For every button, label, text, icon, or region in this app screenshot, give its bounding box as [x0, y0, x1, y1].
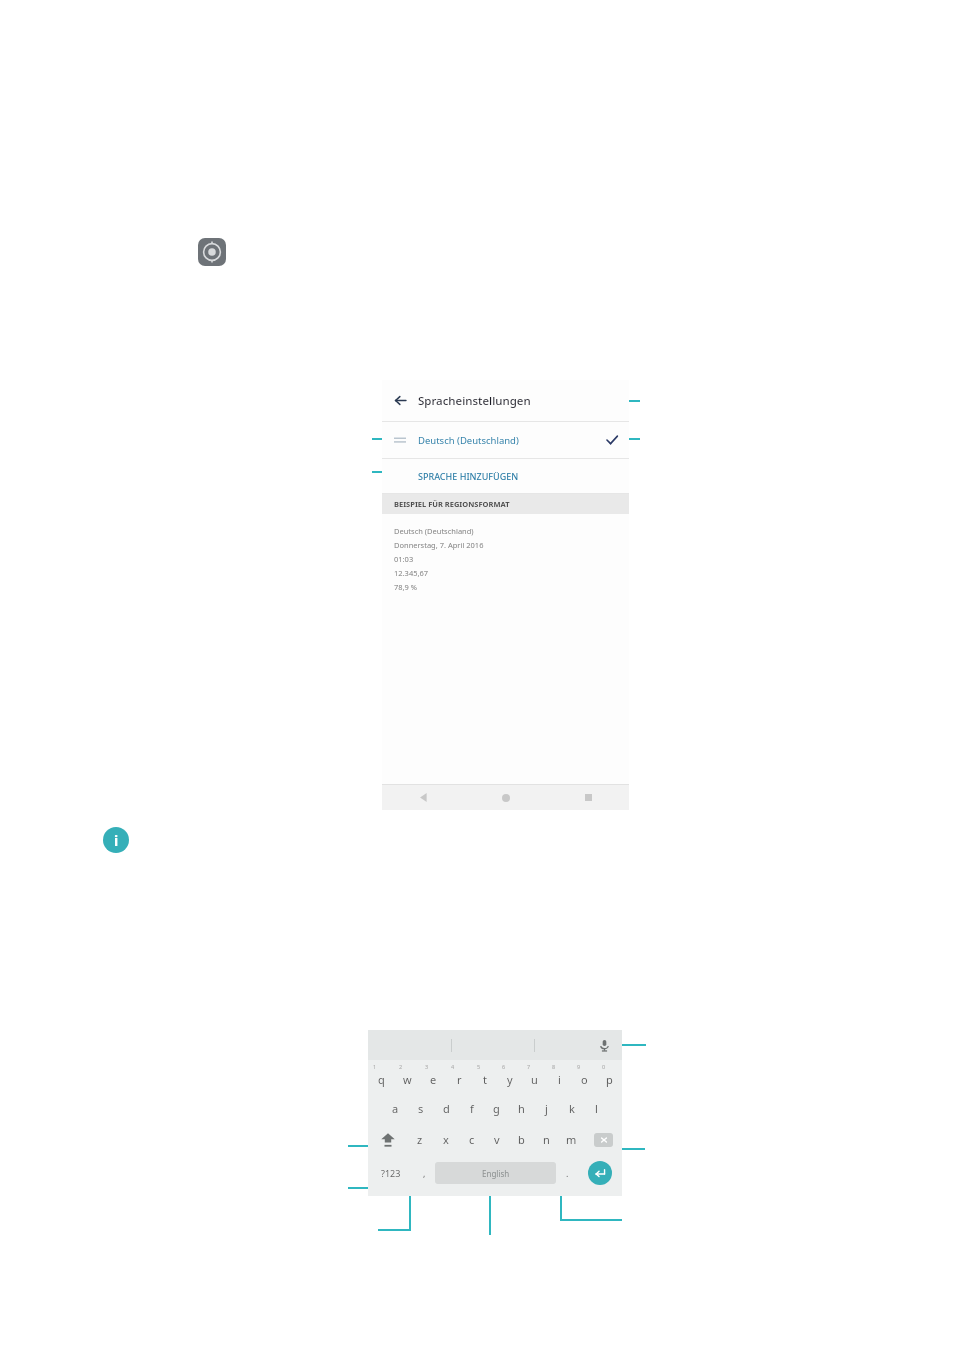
staticText: Spracheinstellungen	[418, 393, 531, 409]
button[interactable]: 4	[446, 1060, 472, 1093]
staticText: 6	[502, 1063, 506, 1070]
staticText: i	[558, 1072, 561, 1087]
button[interactable]: a	[382, 1093, 408, 1124]
button[interactable]: f	[459, 1093, 484, 1124]
staticText: 3	[425, 1063, 429, 1070]
staticText: g	[493, 1101, 500, 1116]
button[interactable]: 3	[420, 1060, 446, 1093]
button[interactable]: d	[434, 1093, 459, 1124]
staticText: English	[482, 1168, 510, 1179]
staticText: ,	[423, 1167, 426, 1179]
button[interactable]: 6	[497, 1060, 522, 1093]
button[interactable]: .	[556, 1155, 578, 1191]
button[interactable]: h	[509, 1093, 534, 1124]
staticText: v	[494, 1132, 500, 1147]
staticText: 78,9 %	[394, 582, 418, 592]
button[interactable]: App icon	[198, 238, 226, 266]
staticText: 01:03	[394, 554, 414, 564]
button[interactable]: n	[534, 1124, 559, 1155]
staticText: z	[417, 1132, 423, 1147]
staticText: 4	[451, 1063, 455, 1070]
staticText: ?123	[381, 1167, 401, 1179]
staticText: e	[430, 1072, 437, 1087]
staticText: h	[518, 1101, 525, 1116]
staticText: r	[457, 1072, 462, 1087]
staticText: m	[566, 1132, 577, 1147]
button[interactable]: g	[484, 1093, 509, 1124]
staticText: n	[543, 1132, 550, 1147]
staticText: x	[443, 1132, 449, 1147]
staticText: u	[531, 1072, 538, 1087]
button[interactable]: 8	[547, 1060, 572, 1093]
button[interactable]: 7	[522, 1060, 547, 1093]
staticText: Donnerstag, 7. April 2016	[394, 540, 484, 550]
staticText: k	[569, 1101, 575, 1116]
button[interactable]: k	[559, 1093, 584, 1124]
button[interactable]: ?123	[368, 1155, 413, 1191]
button[interactable]: 1	[368, 1060, 394, 1093]
staticText: 2	[399, 1063, 403, 1070]
button[interactable]: Back	[382, 380, 629, 421]
staticText: y	[507, 1072, 513, 1087]
staticText: l	[595, 1101, 598, 1116]
button[interactable]: Recents	[547, 785, 629, 810]
button[interactable]: Information	[103, 827, 129, 853]
staticText: w	[403, 1072, 412, 1087]
staticText: 7	[527, 1063, 531, 1070]
button[interactable]: Back	[382, 785, 465, 810]
staticText: 12.345,67	[394, 568, 429, 578]
staticText: BEISPIEL FÜR REGIONSFORMAT	[394, 499, 510, 509]
button[interactable]: Backspace	[584, 1124, 622, 1155]
button[interactable]: 2	[394, 1060, 420, 1093]
button[interactable]: m	[559, 1124, 584, 1155]
staticText: a	[392, 1101, 399, 1116]
button[interactable]: 5	[472, 1060, 497, 1093]
button[interactable]: English	[435, 1162, 556, 1184]
button[interactable]: 9	[572, 1060, 597, 1093]
staticText: b	[518, 1132, 525, 1147]
button[interactable]: Shift	[368, 1124, 407, 1155]
staticText: p	[606, 1072, 613, 1087]
staticText: s	[418, 1101, 424, 1116]
staticText: i	[114, 831, 119, 850]
button[interactable]: Deutsch (Deutschland)	[382, 422, 629, 458]
button[interactable]: z	[407, 1124, 433, 1155]
button[interactable]: x	[433, 1124, 459, 1155]
button[interactable]: Back	[382, 380, 418, 421]
button[interactable]: b	[509, 1124, 534, 1155]
button[interactable]: 0	[597, 1060, 622, 1093]
button[interactable]: SPRACHE HINZUFÜGEN	[382, 459, 629, 493]
button[interactable]: v	[484, 1124, 509, 1155]
staticText: 0	[602, 1063, 606, 1070]
staticText: q	[378, 1072, 385, 1087]
button[interactable]: l	[584, 1093, 609, 1124]
button[interactable]: c	[459, 1124, 484, 1155]
staticText: o	[581, 1072, 588, 1087]
staticText: 9	[577, 1063, 581, 1070]
staticText: SPRACHE HINZUFÜGEN	[418, 470, 519, 482]
staticText: f	[470, 1101, 474, 1116]
button[interactable]: Enter	[578, 1155, 622, 1191]
button[interactable]: ,	[413, 1155, 435, 1191]
staticText: t	[483, 1072, 487, 1087]
button[interactable]: Voice input	[586, 1030, 622, 1060]
staticText: 8	[552, 1063, 556, 1070]
staticText: Deutsch (Deutschland)	[394, 526, 474, 536]
staticText: d	[443, 1101, 450, 1116]
staticText: .	[566, 1167, 569, 1179]
staticText: j	[545, 1101, 548, 1116]
staticText: c	[469, 1132, 475, 1147]
staticText: Deutsch (Deutschland)	[418, 434, 519, 447]
button[interactable]: j	[534, 1093, 559, 1124]
button[interactable]: s	[408, 1093, 434, 1124]
staticText: 5	[477, 1063, 481, 1070]
button[interactable]: Home	[465, 785, 547, 810]
staticText: 1	[373, 1063, 377, 1070]
